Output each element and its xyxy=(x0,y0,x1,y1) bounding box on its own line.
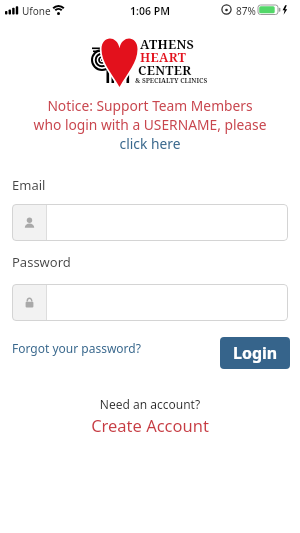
staticText: Password xyxy=(12,253,71,271)
staticText: Ufone xyxy=(22,4,51,18)
button[interactable] xyxy=(12,204,288,241)
button[interactable]: Login xyxy=(220,337,290,369)
staticText: Login xyxy=(233,342,278,364)
staticText: Need an account? xyxy=(0,396,300,412)
staticText: ATHENS xyxy=(140,36,195,53)
button[interactable]: Forgot your password? xyxy=(12,340,141,356)
button[interactable] xyxy=(12,284,288,321)
staticText: & SPECIALTY CLINICS xyxy=(135,76,208,85)
staticText: Email xyxy=(12,176,46,194)
staticText: 1:06 PM xyxy=(0,4,300,18)
staticText: CENTER xyxy=(138,62,192,79)
staticText: HEART xyxy=(140,49,187,66)
button[interactable]: Notice: Support Team Members who login w… xyxy=(0,96,300,153)
button[interactable]: Create Account xyxy=(0,414,300,436)
staticText: 87% xyxy=(236,4,256,18)
